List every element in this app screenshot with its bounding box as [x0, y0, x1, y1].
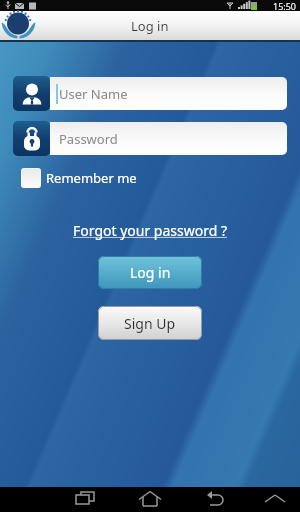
staticText: User Name [59, 85, 128, 103]
button[interactable] [200, 490, 228, 509]
button[interactable] [262, 492, 290, 507]
staticText: Log in [131, 17, 169, 35]
staticText: Log in [130, 263, 171, 282]
button[interactable] [72, 490, 100, 509]
button[interactable]: Password [13, 121, 287, 156]
staticText: 15:50 [273, 0, 297, 11]
staticText: Remember me [46, 169, 137, 187]
button[interactable]: Log in [98, 256, 202, 289]
button[interactable]: Remember me [21, 168, 137, 188]
button[interactable] [136, 490, 164, 509]
staticText: Password [59, 130, 118, 148]
button[interactable]: Sign Up [98, 306, 202, 340]
button[interactable]: Forgot your password ? [73, 221, 228, 240]
button[interactable]: User Name [13, 76, 287, 111]
staticText: Sign Up [124, 314, 176, 333]
